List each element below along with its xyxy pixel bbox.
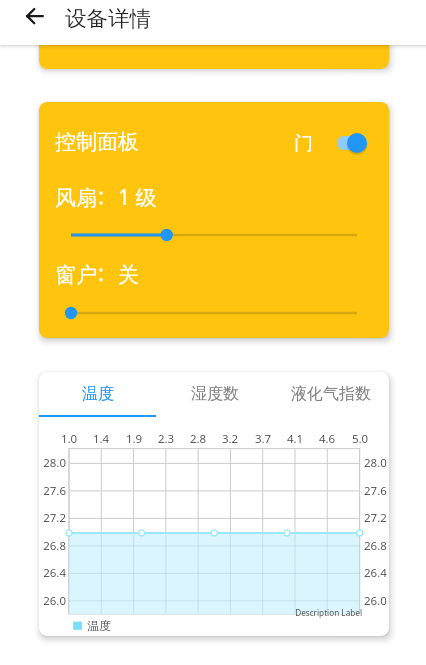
staticText: 3.2 xyxy=(210,431,250,447)
button[interactable]: Window position slider xyxy=(39,299,389,327)
staticText: 28.0 xyxy=(364,455,389,471)
staticText: 1.9 xyxy=(114,431,154,447)
staticText: 27.6 xyxy=(364,483,389,499)
staticText: 湿度数 xyxy=(191,384,239,404)
staticText: 5.0 xyxy=(340,431,380,447)
staticText: 温度 xyxy=(87,618,127,633)
button[interactable]: Door switch xyxy=(334,128,370,158)
staticText: 26.4 xyxy=(39,565,66,581)
staticText: 28.0 xyxy=(39,455,66,471)
staticText: 3.7 xyxy=(243,431,283,447)
staticText: 温度 xyxy=(82,384,114,404)
staticText: 26.0 xyxy=(364,593,389,609)
staticText: 26.4 xyxy=(364,565,389,581)
staticText: 1.4 xyxy=(81,431,121,447)
staticText: 26.0 xyxy=(39,593,66,609)
staticText: 1.0 xyxy=(49,431,89,447)
button[interactable]: Back xyxy=(22,4,46,28)
staticText: 风扇 1 级 xyxy=(55,183,355,212)
button[interactable]: 液化气指数 xyxy=(273,372,389,418)
staticText: 门 xyxy=(294,132,389,156)
staticText: 2.8 xyxy=(178,431,218,447)
staticText: 27.2 xyxy=(364,510,389,526)
staticText: 4.6 xyxy=(307,431,347,447)
staticText: 4.1 xyxy=(275,431,315,447)
staticText: Description Label xyxy=(282,607,362,618)
button[interactable]: 温度 xyxy=(39,372,156,418)
button[interactable]: 湿度数 xyxy=(156,372,273,418)
staticText: 27.2 xyxy=(39,510,66,526)
staticText: 液化气指数 xyxy=(291,384,371,404)
button[interactable]: Fan level slider xyxy=(39,221,389,249)
staticText: 26.8 xyxy=(364,538,389,554)
staticText: 设备详情 xyxy=(65,5,365,32)
staticText: 2.3 xyxy=(146,431,186,447)
staticText: 26.8 xyxy=(39,538,66,554)
staticText: 控制面板 xyxy=(55,129,355,155)
staticText: 窗户 关 xyxy=(55,260,355,289)
staticText: 27.6 xyxy=(39,483,66,499)
button[interactable] xyxy=(39,9,389,69)
